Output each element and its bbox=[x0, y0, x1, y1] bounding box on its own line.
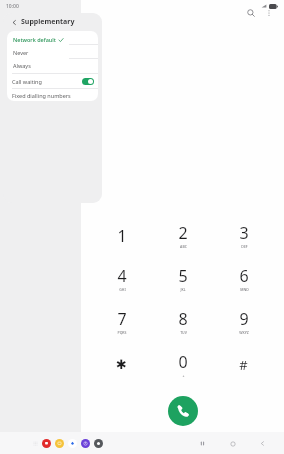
button[interactable]: Network default bbox=[8, 33, 69, 46]
button[interactable]: App 2 bbox=[68, 439, 77, 448]
button[interactable]: ✱ bbox=[91, 343, 152, 386]
staticText: 8 bbox=[178, 308, 188, 330]
button[interactable]: 9 bbox=[213, 300, 274, 343]
staticText: Call barring bbox=[12, 63, 43, 70]
staticText: MNO bbox=[240, 287, 249, 292]
staticText: 10:00 bbox=[6, 3, 19, 10]
button[interactable]: 6 bbox=[213, 257, 274, 300]
button[interactable]: 3 bbox=[213, 214, 274, 257]
button[interactable]: # bbox=[213, 343, 274, 386]
button[interactable]: 4 bbox=[91, 257, 152, 300]
staticText: 2 bbox=[178, 222, 188, 244]
button[interactable] bbox=[7, 31, 98, 44]
staticText: 4 bbox=[117, 265, 127, 287]
staticText: Always bbox=[13, 62, 31, 69]
button[interactable]: Call waiting bbox=[7, 74, 98, 88]
staticText: # bbox=[239, 356, 248, 374]
button[interactable]: Back bbox=[256, 437, 269, 450]
button[interactable]: 8 bbox=[152, 300, 213, 343]
staticText: 1 bbox=[117, 225, 127, 247]
staticText: PQRS bbox=[117, 330, 127, 335]
button[interactable]: App 4 bbox=[94, 439, 103, 448]
button[interactable]: App 1 bbox=[55, 439, 64, 448]
staticText: Never bbox=[13, 49, 29, 56]
staticText: 7 bbox=[117, 308, 127, 330]
button[interactable] bbox=[7, 45, 98, 58]
button[interactable]: Call bbox=[168, 396, 198, 426]
button[interactable]: Never bbox=[8, 46, 69, 59]
button[interactable]: Always bbox=[8, 59, 69, 72]
staticText: 9 bbox=[239, 308, 249, 330]
button[interactable]: 0 bbox=[152, 343, 213, 386]
staticText: ABC bbox=[180, 244, 187, 249]
button[interactable]: Call barring bbox=[7, 59, 98, 73]
staticText: 5 bbox=[178, 265, 188, 287]
staticText: Supplementary services bbox=[21, 17, 102, 27]
staticText: GHI bbox=[119, 287, 126, 292]
button[interactable]: Fixed dialling numbers bbox=[7, 89, 98, 101]
button[interactable]: Home bbox=[226, 437, 239, 450]
button[interactable]: Back bbox=[9, 17, 19, 27]
staticText: 6 bbox=[239, 265, 249, 287]
button[interactable]: 2 bbox=[152, 214, 213, 257]
staticText: + bbox=[182, 373, 185, 378]
staticText: WXYZ bbox=[239, 330, 249, 335]
button[interactable]: Search bbox=[242, 4, 260, 22]
staticText: Fixed dialling numbers bbox=[12, 92, 71, 99]
button[interactable]: 5 bbox=[152, 257, 213, 300]
button[interactable]: 1 bbox=[91, 214, 152, 257]
staticText: Call waiting bbox=[12, 78, 42, 85]
staticText: ✱ bbox=[116, 357, 127, 372]
staticText: TUV bbox=[180, 330, 187, 335]
button[interactable]: 7 bbox=[91, 300, 152, 343]
button[interactable]: Recents bbox=[196, 437, 209, 450]
staticText: DEF bbox=[241, 244, 248, 249]
staticText: Network default bbox=[13, 36, 56, 43]
button[interactable]: App 0 bbox=[42, 439, 51, 448]
button[interactable]: App 3 bbox=[81, 439, 90, 448]
staticText: JKL bbox=[180, 287, 186, 292]
staticText: 0 bbox=[178, 351, 188, 373]
staticText: 3 bbox=[239, 222, 249, 244]
button[interactable]: More options bbox=[260, 4, 278, 22]
